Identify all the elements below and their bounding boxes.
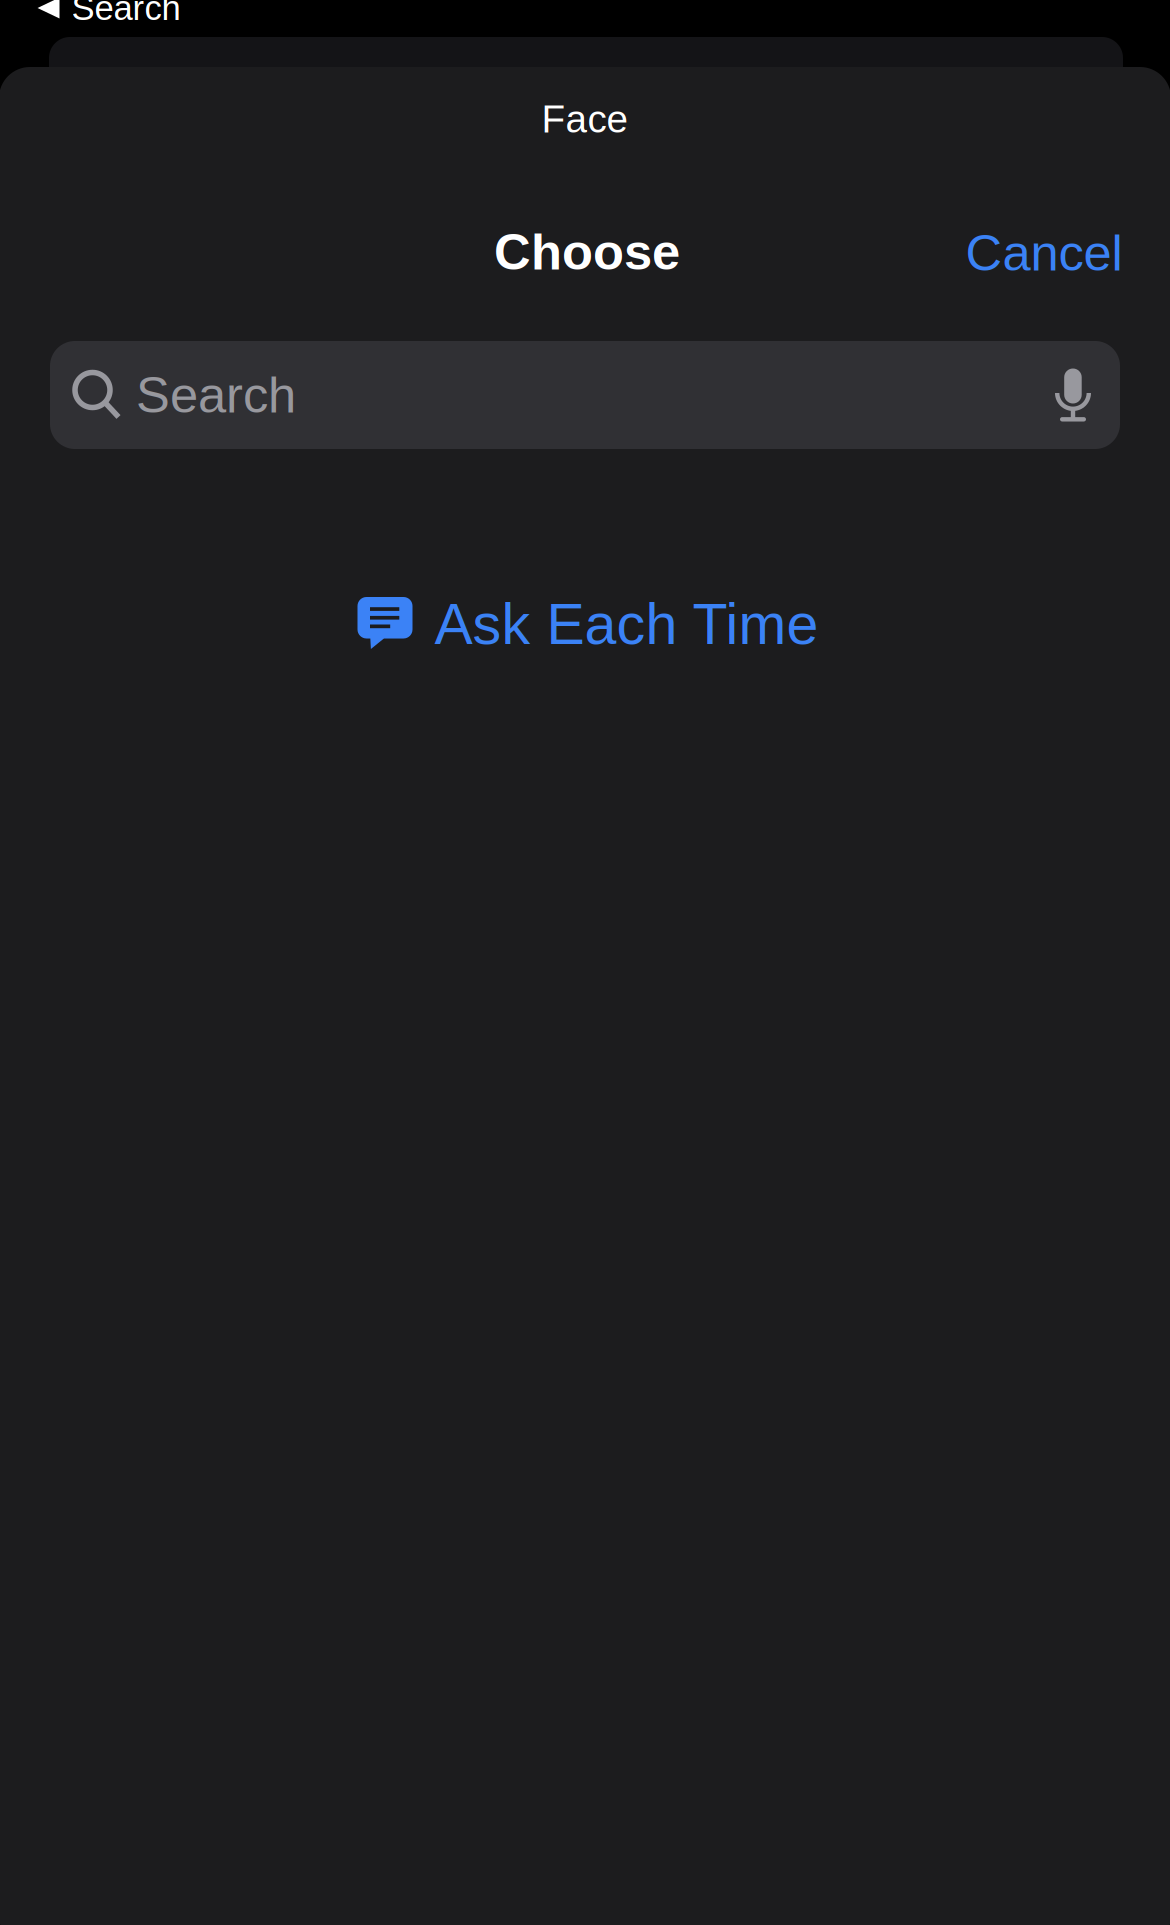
staticText: Cancel [965, 225, 1122, 281]
staticText: Ask Each Time [434, 592, 818, 656]
staticText: Search [71, 0, 180, 27]
staticText: Choose [494, 224, 680, 280]
button[interactable]: Cancel [943, 207, 1144, 299]
button[interactable]: Search [37, 0, 180, 27]
button[interactable]: Search [50, 341, 1120, 449]
staticText: Face [541, 97, 628, 141]
staticText: Search [136, 367, 296, 423]
button[interactable]: Dictate [1039, 354, 1107, 435]
button[interactable]: Ask Each Time [53, 574, 1123, 670]
